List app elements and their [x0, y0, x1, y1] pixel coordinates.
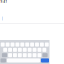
button[interactable]: L — [42, 48, 46, 52]
button[interactable]: B — [28, 53, 32, 57]
button[interactable]: H — [28, 48, 32, 52]
button[interactable]: Q — [1, 42, 5, 47]
button[interactable]: space — [7, 58, 40, 62]
button[interactable]: I — [35, 42, 39, 47]
button[interactable]: U — [30, 42, 34, 47]
button[interactable]: C — [18, 53, 22, 57]
button[interactable]: P — [45, 42, 49, 47]
button[interactable]: A — [3, 48, 7, 52]
button[interactable]: W — [6, 42, 10, 47]
button[interactable]: X — [13, 53, 17, 57]
button[interactable]: Numbers — [0, 58, 6, 62]
button[interactable]: S — [8, 48, 12, 52]
staticText: 9:41 — [0, 0, 7, 3]
button[interactable]: return — [41, 58, 49, 62]
button[interactable]: V — [23, 53, 27, 57]
button[interactable]: R — [15, 42, 19, 47]
button[interactable]: Key — [42, 53, 48, 57]
button[interactable]: O — [40, 42, 44, 47]
button[interactable]: T — [20, 42, 24, 47]
button[interactable]: D — [13, 48, 17, 52]
button[interactable]: Z — [8, 53, 12, 57]
button[interactable]: G — [23, 48, 27, 52]
button[interactable]: F — [18, 48, 22, 52]
button[interactable]: E — [11, 42, 14, 47]
button[interactable]: Y — [25, 42, 29, 47]
